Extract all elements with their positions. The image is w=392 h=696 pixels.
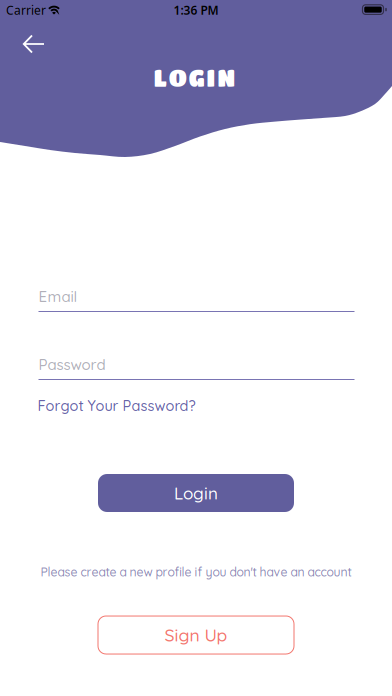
staticText: O bbox=[169, 64, 187, 91]
staticText: N bbox=[217, 64, 235, 91]
button[interactable]: Email bbox=[38, 287, 354, 312]
staticText: G bbox=[189, 64, 205, 91]
button[interactable]: Login bbox=[98, 474, 294, 512]
staticText: Login bbox=[174, 482, 218, 504]
staticText: 1:36 PM bbox=[173, 2, 218, 18]
button[interactable]: Forgot Your Password? bbox=[37, 396, 195, 414]
staticText: I bbox=[206, 64, 215, 91]
staticText: Forgot Your Password? bbox=[37, 396, 195, 414]
button[interactable]: Password bbox=[38, 355, 354, 380]
staticText: Email bbox=[38, 287, 77, 306]
button[interactable]: Sign Up bbox=[98, 616, 294, 654]
staticText: L bbox=[154, 64, 167, 91]
button[interactable] bbox=[11, 23, 56, 64]
staticText: Password bbox=[38, 355, 105, 374]
staticText: Sign Up bbox=[164, 624, 227, 646]
staticText: Carrier bbox=[6, 2, 46, 18]
staticText: Please create a new profile if you don't… bbox=[40, 564, 351, 580]
